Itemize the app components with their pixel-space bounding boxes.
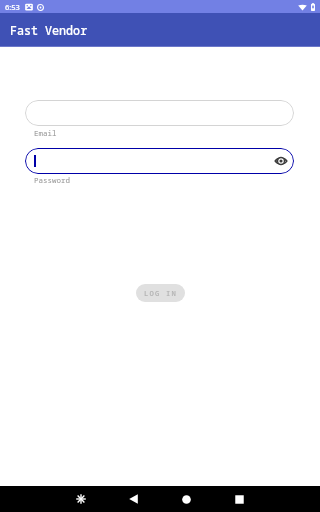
- staticText: Email: [34, 128, 57, 138]
- button[interactable]: Show password: [274, 154, 288, 168]
- button[interactable]: [25, 100, 294, 126]
- staticText: LOG IN: [144, 288, 178, 298]
- button[interactable]: Back: [107, 486, 160, 512]
- staticText: Fast Vendor: [10, 22, 88, 38]
- button[interactable]: Recents: [213, 486, 266, 512]
- button[interactable]: Brightness: [54, 486, 107, 512]
- staticText: Password: [34, 175, 70, 185]
- button[interactable]: Home: [160, 486, 213, 512]
- button[interactable]: LOG IN: [136, 284, 185, 302]
- button[interactable]: Show password: [25, 148, 294, 174]
- staticText: 6:53: [5, 2, 20, 12]
